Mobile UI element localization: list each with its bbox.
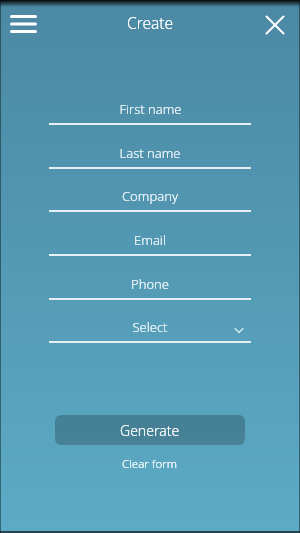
button[interactable]: Email <box>49 224 251 256</box>
staticText: Clear form <box>122 456 178 472</box>
staticText: Generate <box>120 421 180 440</box>
button[interactable]: Last name <box>49 137 251 169</box>
staticText: First name <box>119 100 182 118</box>
staticText: Select <box>132 318 168 336</box>
staticText: Email <box>134 231 166 249</box>
button[interactable]: Company <box>49 180 251 212</box>
button[interactable] <box>258 8 292 42</box>
button[interactable]: Phone <box>49 268 251 300</box>
staticText: Company <box>122 187 178 205</box>
button[interactable]: First name <box>49 93 251 125</box>
button[interactable] <box>4 9 44 39</box>
button[interactable]: Clear form <box>122 456 178 472</box>
staticText: Create <box>127 12 174 33</box>
staticText: Last name <box>119 144 181 162</box>
button[interactable]: Generate <box>55 415 245 445</box>
staticText: Phone <box>131 275 169 293</box>
button[interactable]: Select <box>49 311 251 343</box>
